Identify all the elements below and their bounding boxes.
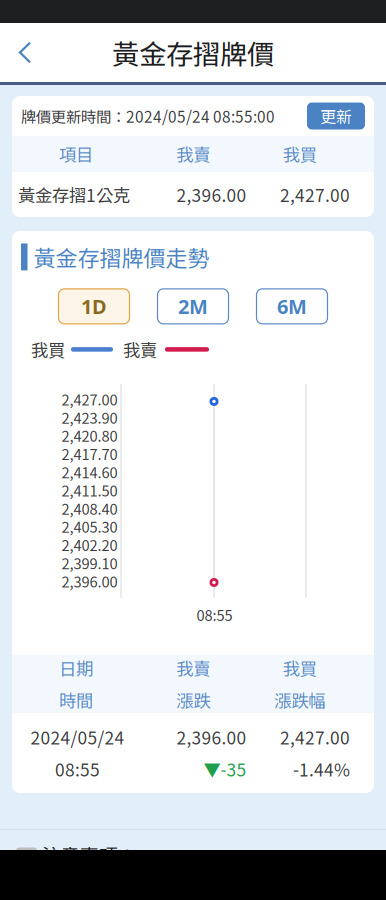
button[interactable]: 1D [58,289,129,324]
staticText: 我賣 [176,141,210,167]
staticText: 08:55 [55,756,100,782]
staticText: 1D [81,293,107,320]
staticText: 2,399.10 [61,552,117,573]
staticText: 牌價更新時間：2024/05/24 08:55:00 [21,105,275,127]
staticText: 我買 [283,655,317,680]
button[interactable]: 2M [157,289,228,324]
staticText: 2,411.50 [61,479,117,501]
staticText: 時間 [59,687,93,713]
staticText: 6M [277,293,307,320]
staticText: 2,396.00 [176,182,246,207]
staticText: 2,423.90 [61,407,117,428]
staticText: 2M [178,293,208,320]
staticText: 2,427.00 [280,182,350,207]
staticText: 2,402.20 [61,534,117,555]
staticText: 2,427.00 [280,724,350,749]
staticText: 08:55 [196,604,232,625]
staticText: 2,427.00 [61,388,117,410]
staticText: 我買 [283,141,317,167]
staticText: 我賣 [176,655,210,680]
staticText: 黃金存摺牌價走勢 [33,241,209,273]
button[interactable]: 返回 [7,26,43,78]
staticText: 項目 [59,141,93,167]
staticText: 2,405.30 [61,516,117,537]
staticText: 2,414.60 [61,461,117,482]
staticText: -1.44% [293,756,350,782]
staticText: 我買 [31,337,65,362]
staticText: 更新 [320,104,352,128]
staticText: 漲跌幅 [274,687,325,713]
staticText: 我賣 [123,337,157,362]
staticText: 2024/05/24 [30,724,124,749]
staticText: 漲跌 [176,687,210,713]
staticText: 2,396.00 [61,570,117,592]
button[interactable]: 更新 [307,102,365,129]
staticText: 注意事項： [42,841,137,868]
staticText: 2,420.80 [61,425,117,446]
staticText: ▼-35 [203,756,246,782]
staticText: 日期 [59,655,93,680]
staticText: 黃金存摺牌價 [112,33,274,72]
button[interactable]: 6M [256,289,327,324]
staticText: 2,408.40 [61,498,117,519]
staticText: 黃金存摺1公克 [18,182,130,207]
staticText: 2,417.70 [61,443,117,464]
staticText: 2,396.00 [176,724,246,749]
